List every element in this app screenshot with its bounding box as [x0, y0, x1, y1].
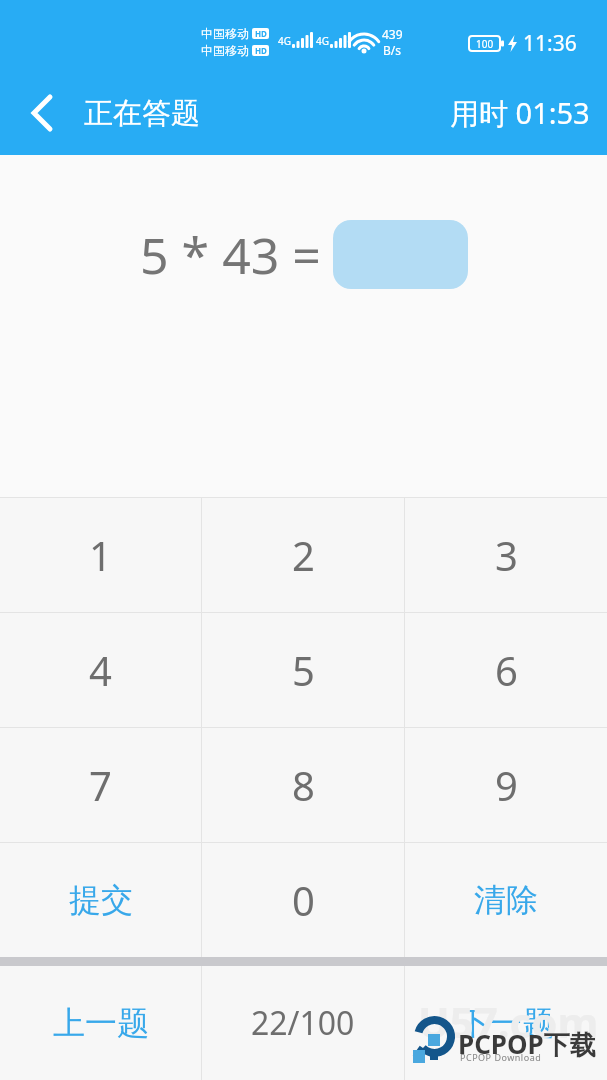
button[interactable]: 5: [202, 613, 404, 727]
staticText: 下一题: [458, 1003, 554, 1043]
button[interactable]: 6: [405, 613, 607, 727]
button[interactable]: 7: [0, 728, 201, 842]
button[interactable]: 清除: [405, 843, 607, 957]
staticText: 3: [495, 528, 518, 582]
staticText: PCPOP Download: [460, 1051, 542, 1063]
staticText: 中国移动: [201, 43, 249, 58]
staticText: 5: [292, 643, 315, 697]
staticText: 中国移动: [201, 26, 249, 41]
staticText: 7: [89, 758, 112, 812]
button[interactable]: 9: [405, 728, 607, 842]
staticText: 6: [495, 643, 518, 697]
staticText: 4: [89, 643, 112, 697]
staticText: 用时 01:53: [450, 93, 590, 133]
button[interactable]: [19, 90, 63, 136]
staticText: 4G: [316, 34, 329, 48]
staticText: 正在答题: [84, 95, 200, 132]
button[interactable]: 3: [405, 498, 607, 612]
staticText: 22/100: [251, 1001, 355, 1045]
staticText: 9: [495, 758, 518, 812]
staticText: PCPOP下载: [458, 1026, 596, 1062]
button[interactable]: 22/100: [202, 966, 404, 1080]
staticText: HD: [255, 45, 267, 56]
staticText: 0: [292, 873, 315, 927]
button[interactable]: 0: [202, 843, 404, 957]
button[interactable]: 4: [0, 613, 201, 727]
staticText: 8: [292, 758, 315, 812]
staticText: 提交: [69, 880, 133, 920]
staticText: 2: [292, 528, 315, 582]
staticText: 上一题: [53, 1003, 149, 1043]
staticText: HD: [255, 28, 267, 39]
button[interactable]: 下一题: [405, 966, 607, 1080]
staticText: 5 * 43 =: [140, 221, 321, 289]
button[interactable]: 提交: [0, 843, 201, 957]
staticText: 4G: [278, 34, 291, 48]
button[interactable]: 1: [0, 498, 201, 612]
staticText: 100: [476, 37, 494, 51]
staticText: B/s: [383, 42, 402, 58]
staticText: 清除: [474, 880, 538, 920]
staticText: 1: [89, 528, 112, 582]
staticText: 11:36: [523, 29, 577, 58]
button[interactable]: 8: [202, 728, 404, 842]
staticText: 439: [382, 26, 403, 42]
button[interactable]: 2: [202, 498, 404, 612]
staticText: U57.com: [418, 993, 599, 1050]
button[interactable]: 上一题: [0, 966, 201, 1080]
